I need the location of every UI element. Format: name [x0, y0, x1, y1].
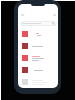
button[interactable] — [18, 67, 58, 73]
button[interactable] — [18, 31, 58, 37]
button[interactable] — [18, 43, 58, 49]
button[interactable] — [18, 79, 58, 85]
button[interactable] — [18, 55, 58, 61]
button[interactable]: Search — [20, 21, 57, 26]
